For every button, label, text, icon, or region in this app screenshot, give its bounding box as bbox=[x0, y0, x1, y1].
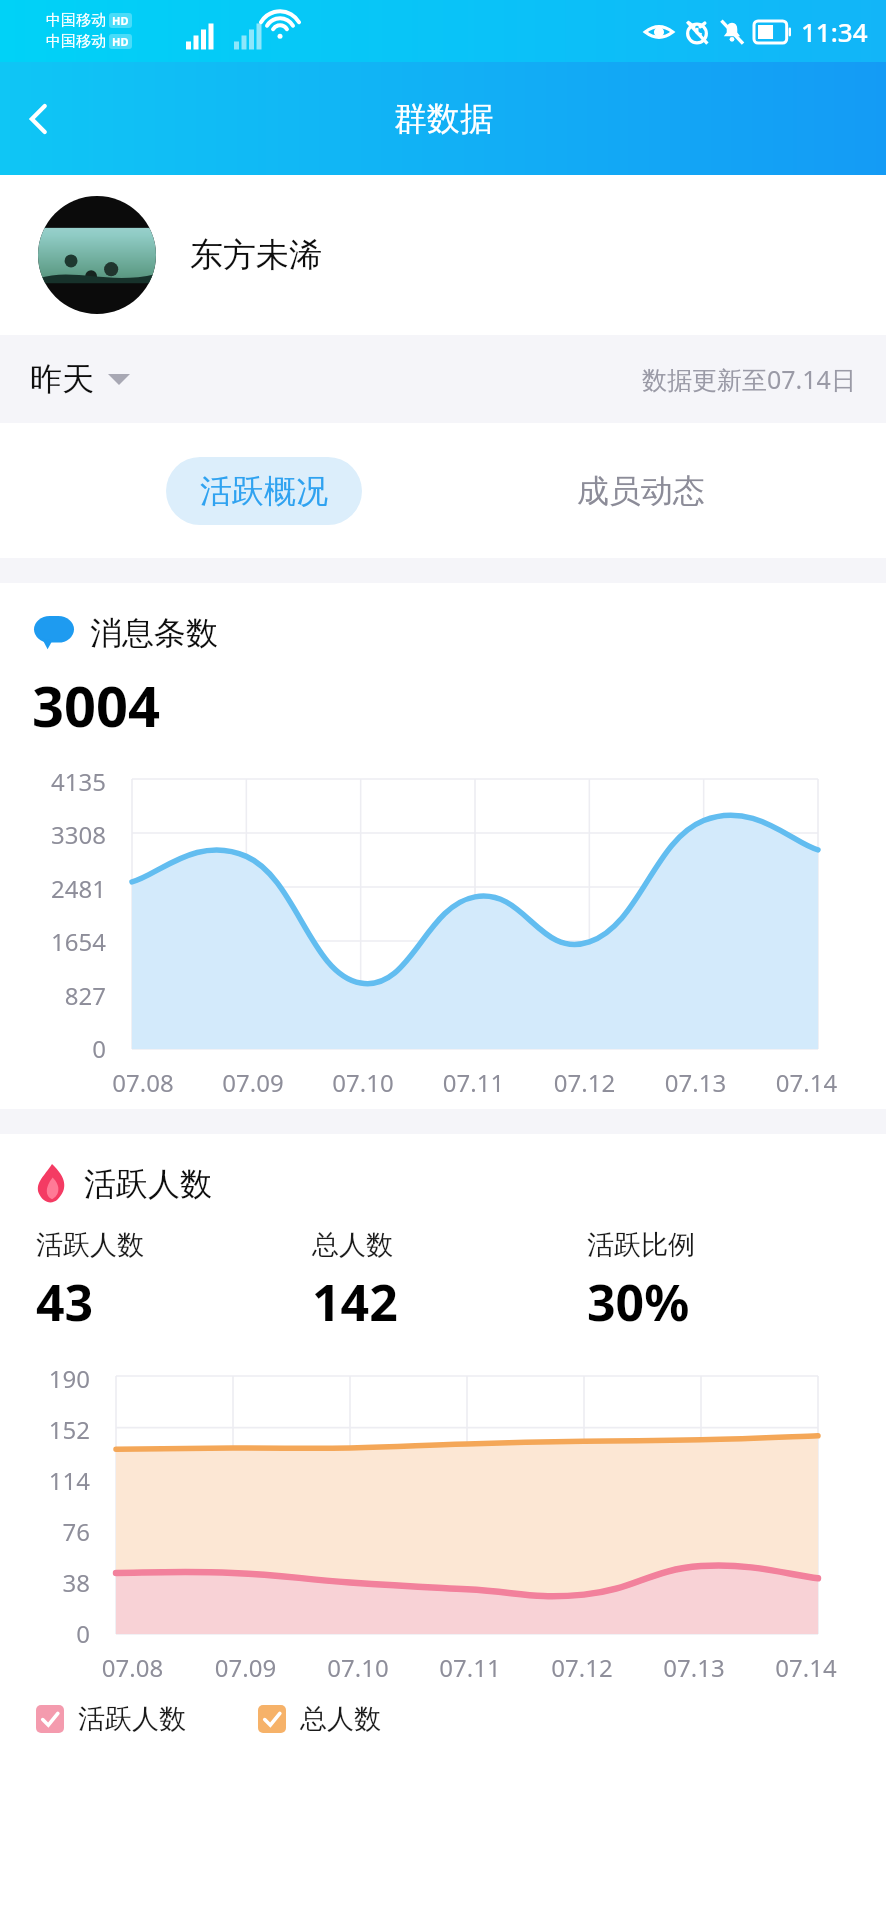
staticText: 07.14 bbox=[750, 1651, 862, 1684]
staticText: 3004 bbox=[32, 667, 161, 743]
staticText: 07.12 bbox=[529, 1066, 640, 1099]
staticText: 07.08 bbox=[76, 1651, 189, 1684]
staticText: 数据更新至07.14日 bbox=[642, 362, 856, 396]
staticText: 东方未浠 bbox=[190, 234, 322, 276]
staticText: 07.08 bbox=[88, 1066, 198, 1099]
staticText: 群数据 bbox=[394, 98, 493, 140]
staticText: 07.09 bbox=[198, 1066, 308, 1099]
staticText: 总人数 bbox=[312, 1228, 393, 1262]
button[interactable]: 总人数 bbox=[258, 1702, 381, 1736]
staticText: 30% bbox=[587, 1268, 690, 1336]
staticText: 1654 bbox=[0, 925, 106, 958]
staticText: 114 bbox=[0, 1464, 90, 1497]
staticText: HD bbox=[112, 13, 129, 28]
staticText: 昨天 bbox=[30, 359, 94, 399]
staticText: 76 bbox=[0, 1515, 90, 1548]
staticText: 07.13 bbox=[640, 1066, 751, 1099]
staticText: 消息条数 bbox=[90, 613, 218, 653]
staticText: 142 bbox=[312, 1268, 398, 1336]
staticText: 总人数 bbox=[300, 1702, 381, 1736]
staticText: 11:34 bbox=[801, 14, 868, 49]
button[interactable]: Back bbox=[8, 88, 70, 150]
staticText: 38 bbox=[0, 1566, 90, 1599]
staticText: 07.11 bbox=[418, 1066, 529, 1099]
staticText: 07.14 bbox=[751, 1066, 862, 1099]
staticText: 07.10 bbox=[308, 1066, 418, 1099]
button[interactable]: 成员动态 bbox=[543, 457, 739, 525]
staticText: 07.12 bbox=[526, 1651, 638, 1684]
staticText: 827 bbox=[0, 979, 106, 1012]
staticText: HD bbox=[112, 34, 129, 49]
staticText: 4135 bbox=[0, 765, 106, 798]
staticText: 3308 bbox=[0, 818, 106, 851]
staticText: 活跃比例 bbox=[587, 1228, 695, 1262]
staticText: 07.09 bbox=[189, 1651, 302, 1684]
staticText: 2481 bbox=[0, 872, 106, 905]
staticText: 中国移动 bbox=[46, 32, 106, 51]
staticText: 中国移动 bbox=[46, 11, 106, 30]
staticText: 07.13 bbox=[638, 1651, 750, 1684]
staticText: 0 bbox=[0, 1617, 90, 1650]
button[interactable]: 昨天 bbox=[30, 359, 130, 399]
button[interactable]: 东方未浠 bbox=[0, 175, 886, 335]
staticText: 活跃人数 bbox=[78, 1702, 186, 1736]
button[interactable]: 活跃人数 bbox=[36, 1702, 186, 1736]
staticText: 07.10 bbox=[302, 1651, 414, 1684]
staticText: 07.11 bbox=[414, 1651, 526, 1684]
staticText: 活跃人数 bbox=[36, 1228, 144, 1262]
button[interactable]: 活跃概况 bbox=[166, 457, 362, 525]
staticText: 152 bbox=[0, 1413, 90, 1446]
staticText: 活跃概况 bbox=[200, 471, 328, 511]
staticText: 0 bbox=[0, 1032, 106, 1065]
staticText: 成员动态 bbox=[577, 471, 705, 511]
staticText: 190 bbox=[0, 1362, 90, 1395]
staticText: 43 bbox=[36, 1268, 94, 1336]
staticText: 活跃人数 bbox=[84, 1164, 212, 1204]
